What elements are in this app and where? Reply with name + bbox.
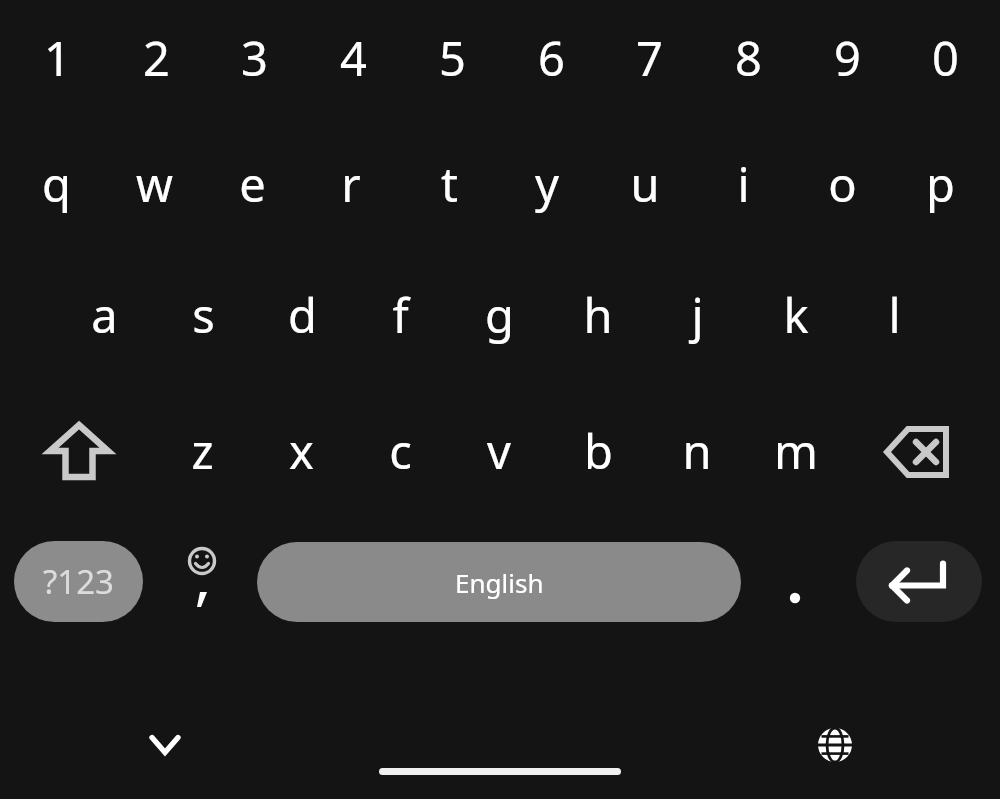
- button[interactable]: j: [649, 265, 745, 365]
- staticText: ?123: [43, 559, 114, 604]
- button[interactable]: 6: [503, 8, 599, 108]
- staticText: f: [392, 283, 409, 347]
- button[interactable]: 0: [897, 8, 993, 108]
- staticText: e: [239, 152, 266, 216]
- staticText: g: [485, 283, 514, 347]
- button[interactable]: 2: [108, 8, 204, 108]
- button[interactable]: Enter: [856, 541, 982, 622]
- button[interactable]: Emoji and comma: [160, 533, 244, 627]
- staticText: 3: [241, 26, 268, 90]
- staticText: 0: [932, 26, 959, 90]
- button[interactable]: t: [401, 134, 497, 234]
- button[interactable]: z: [154, 401, 250, 501]
- button[interactable]: y: [499, 134, 595, 234]
- button[interactable]: 4: [305, 8, 401, 108]
- staticText: 2: [143, 26, 170, 90]
- button[interactable]: x: [253, 401, 349, 501]
- button[interactable]: w: [106, 134, 202, 234]
- button[interactable]: f: [352, 265, 448, 365]
- staticText: l: [888, 283, 901, 347]
- button[interactable]: ?123: [14, 541, 143, 622]
- staticText: x: [289, 419, 314, 483]
- button[interactable]: m: [748, 401, 844, 501]
- button[interactable]: Switch language: [801, 711, 869, 779]
- staticText: m: [774, 419, 818, 483]
- button[interactable]: 1: [9, 8, 105, 108]
- staticText: v: [487, 419, 511, 483]
- staticText: o: [828, 152, 857, 216]
- button[interactable]: r: [303, 134, 399, 234]
- button[interactable]: u: [597, 134, 693, 234]
- button[interactable]: g: [451, 265, 547, 365]
- button[interactable]: o: [794, 134, 890, 234]
- button[interactable]: e: [204, 134, 300, 234]
- staticText: 5: [439, 26, 466, 90]
- button[interactable]: 7: [601, 8, 697, 108]
- staticText: 1: [44, 26, 71, 90]
- staticText: p: [926, 152, 955, 216]
- button[interactable]: 3: [206, 8, 302, 108]
- staticText: b: [584, 419, 613, 483]
- button[interactable]: Hide keyboard: [131, 711, 199, 779]
- button[interactable]: b: [550, 401, 646, 501]
- staticText: a: [91, 283, 118, 347]
- button[interactable]: c: [352, 401, 448, 501]
- staticText: i: [737, 152, 750, 216]
- button[interactable]: s: [155, 265, 251, 365]
- staticText: 8: [735, 26, 762, 90]
- button[interactable]: d: [254, 265, 350, 365]
- button[interactable]: q: [8, 134, 104, 234]
- staticText: z: [191, 419, 214, 483]
- staticText: r: [341, 152, 361, 216]
- staticText: English: [455, 565, 544, 600]
- staticText: u: [630, 152, 660, 216]
- button[interactable]: English: [257, 542, 741, 622]
- button[interactable]: 8: [700, 8, 796, 108]
- button[interactable]: Backspace: [865, 402, 975, 502]
- button[interactable]: a: [56, 265, 152, 365]
- staticText: t: [441, 152, 458, 216]
- staticText: y: [535, 152, 559, 216]
- button[interactable]: 5: [404, 8, 500, 108]
- button[interactable]: k: [748, 265, 844, 365]
- button[interactable]: 9: [799, 8, 895, 108]
- staticText: d: [288, 283, 317, 347]
- staticText: 7: [636, 26, 663, 90]
- staticText: h: [583, 283, 613, 347]
- staticText: 4: [340, 26, 367, 90]
- staticText: n: [682, 419, 712, 483]
- staticText: c: [389, 419, 412, 483]
- button[interactable]: Shift: [24, 402, 134, 502]
- staticText: j: [691, 283, 704, 347]
- staticText: w: [136, 152, 173, 216]
- button[interactable]: v: [451, 401, 547, 501]
- button[interactable]: h: [550, 265, 646, 365]
- staticText: 9: [834, 26, 861, 90]
- staticText: s: [192, 283, 215, 347]
- staticText: k: [783, 283, 809, 347]
- button[interactable]: Period: [755, 533, 835, 627]
- button[interactable]: l: [846, 265, 942, 365]
- staticText: 6: [538, 26, 565, 90]
- button[interactable]: i: [695, 134, 791, 234]
- staticText: q: [42, 152, 71, 216]
- button[interactable]: n: [649, 401, 745, 501]
- button[interactable]: p: [892, 134, 988, 234]
